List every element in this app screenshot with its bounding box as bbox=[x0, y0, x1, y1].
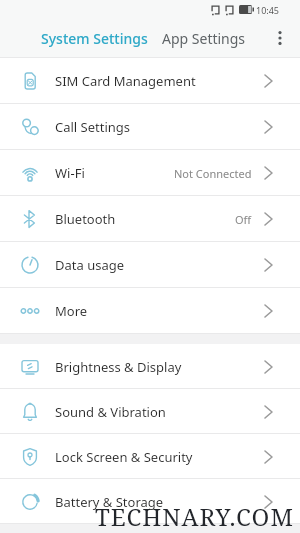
staticText: 10:45 bbox=[256, 4, 280, 16]
staticText: Brightness & Display bbox=[55, 358, 182, 376]
staticText: Call Settings bbox=[55, 118, 131, 136]
button[interactable]: Call Settings bbox=[0, 104, 300, 150]
staticText: TECHNARY.COM bbox=[95, 500, 294, 533]
staticText: Wi-Fi bbox=[55, 164, 85, 182]
button[interactable]: Data usage bbox=[0, 242, 300, 288]
button[interactable]: More bbox=[0, 288, 300, 334]
button[interactable]: Wi-Fi bbox=[0, 150, 300, 196]
staticText: Battery & Storage bbox=[55, 493, 164, 511]
staticText: Off bbox=[235, 212, 252, 227]
staticText: SIM Card Management bbox=[55, 72, 196, 90]
button[interactable]: Brightness & Display bbox=[0, 344, 300, 389]
staticText: More bbox=[55, 302, 88, 320]
staticText: Bluetooth bbox=[55, 210, 116, 228]
button[interactable]: Bluetooth bbox=[0, 196, 300, 242]
staticText: Sound & Vibration bbox=[55, 403, 166, 421]
button[interactable]: Lock Screen & Security bbox=[0, 434, 300, 479]
staticText: Lock Screen & Security bbox=[55, 448, 193, 466]
button[interactable]: Battery & Storage bbox=[0, 479, 300, 524]
button[interactable]: System Settings bbox=[39, 19, 149, 57]
button[interactable]: App Settings bbox=[149, 19, 259, 57]
button[interactable] bbox=[259, 19, 300, 57]
staticText: Data usage bbox=[55, 256, 125, 274]
staticText: System Settings bbox=[41, 29, 148, 48]
button[interactable]: SIM Card Management bbox=[0, 58, 300, 104]
staticText: App Settings bbox=[162, 29, 246, 48]
staticText: Not Connected bbox=[174, 166, 252, 181]
button[interactable]: Sound & Vibration bbox=[0, 389, 300, 434]
